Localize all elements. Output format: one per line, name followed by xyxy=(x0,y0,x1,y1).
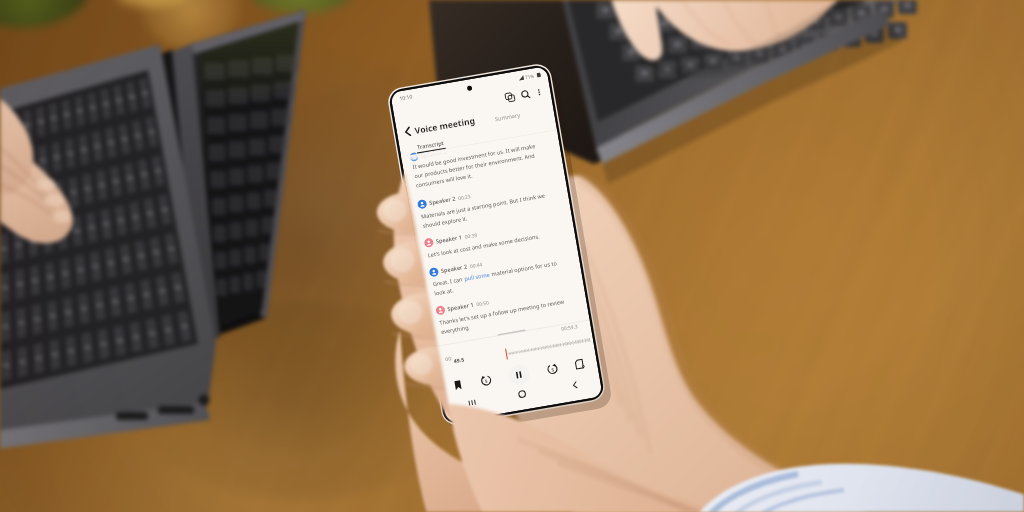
button[interactable]: Summary xyxy=(489,107,526,128)
button[interactable]: Rewind 5 seconds xyxy=(476,373,494,391)
button[interactable]: Search xyxy=(515,86,533,105)
button[interactable] xyxy=(427,283,587,342)
button[interactable]: Back xyxy=(564,377,584,394)
button[interactable] xyxy=(409,178,570,241)
button[interactable]: Pause xyxy=(505,363,530,387)
button[interactable]: Transcript xyxy=(412,132,455,155)
button[interactable]: Back xyxy=(397,121,416,142)
button[interactable]: Home xyxy=(512,386,530,403)
button[interactable] xyxy=(401,132,563,201)
button[interactable] xyxy=(416,216,575,269)
button[interactable]: Translate xyxy=(499,89,518,107)
button[interactable]: Recent apps xyxy=(460,394,483,412)
button[interactable]: Back xyxy=(0,0,1024,512)
button[interactable]: Bookmark xyxy=(448,378,467,396)
button[interactable]: More options xyxy=(530,84,547,102)
button[interactable]: Add note xyxy=(569,357,588,375)
button[interactable]: Forward 5 seconds xyxy=(542,361,560,380)
button[interactable] xyxy=(420,245,581,308)
button[interactable]: Voice meeting xyxy=(412,110,477,140)
